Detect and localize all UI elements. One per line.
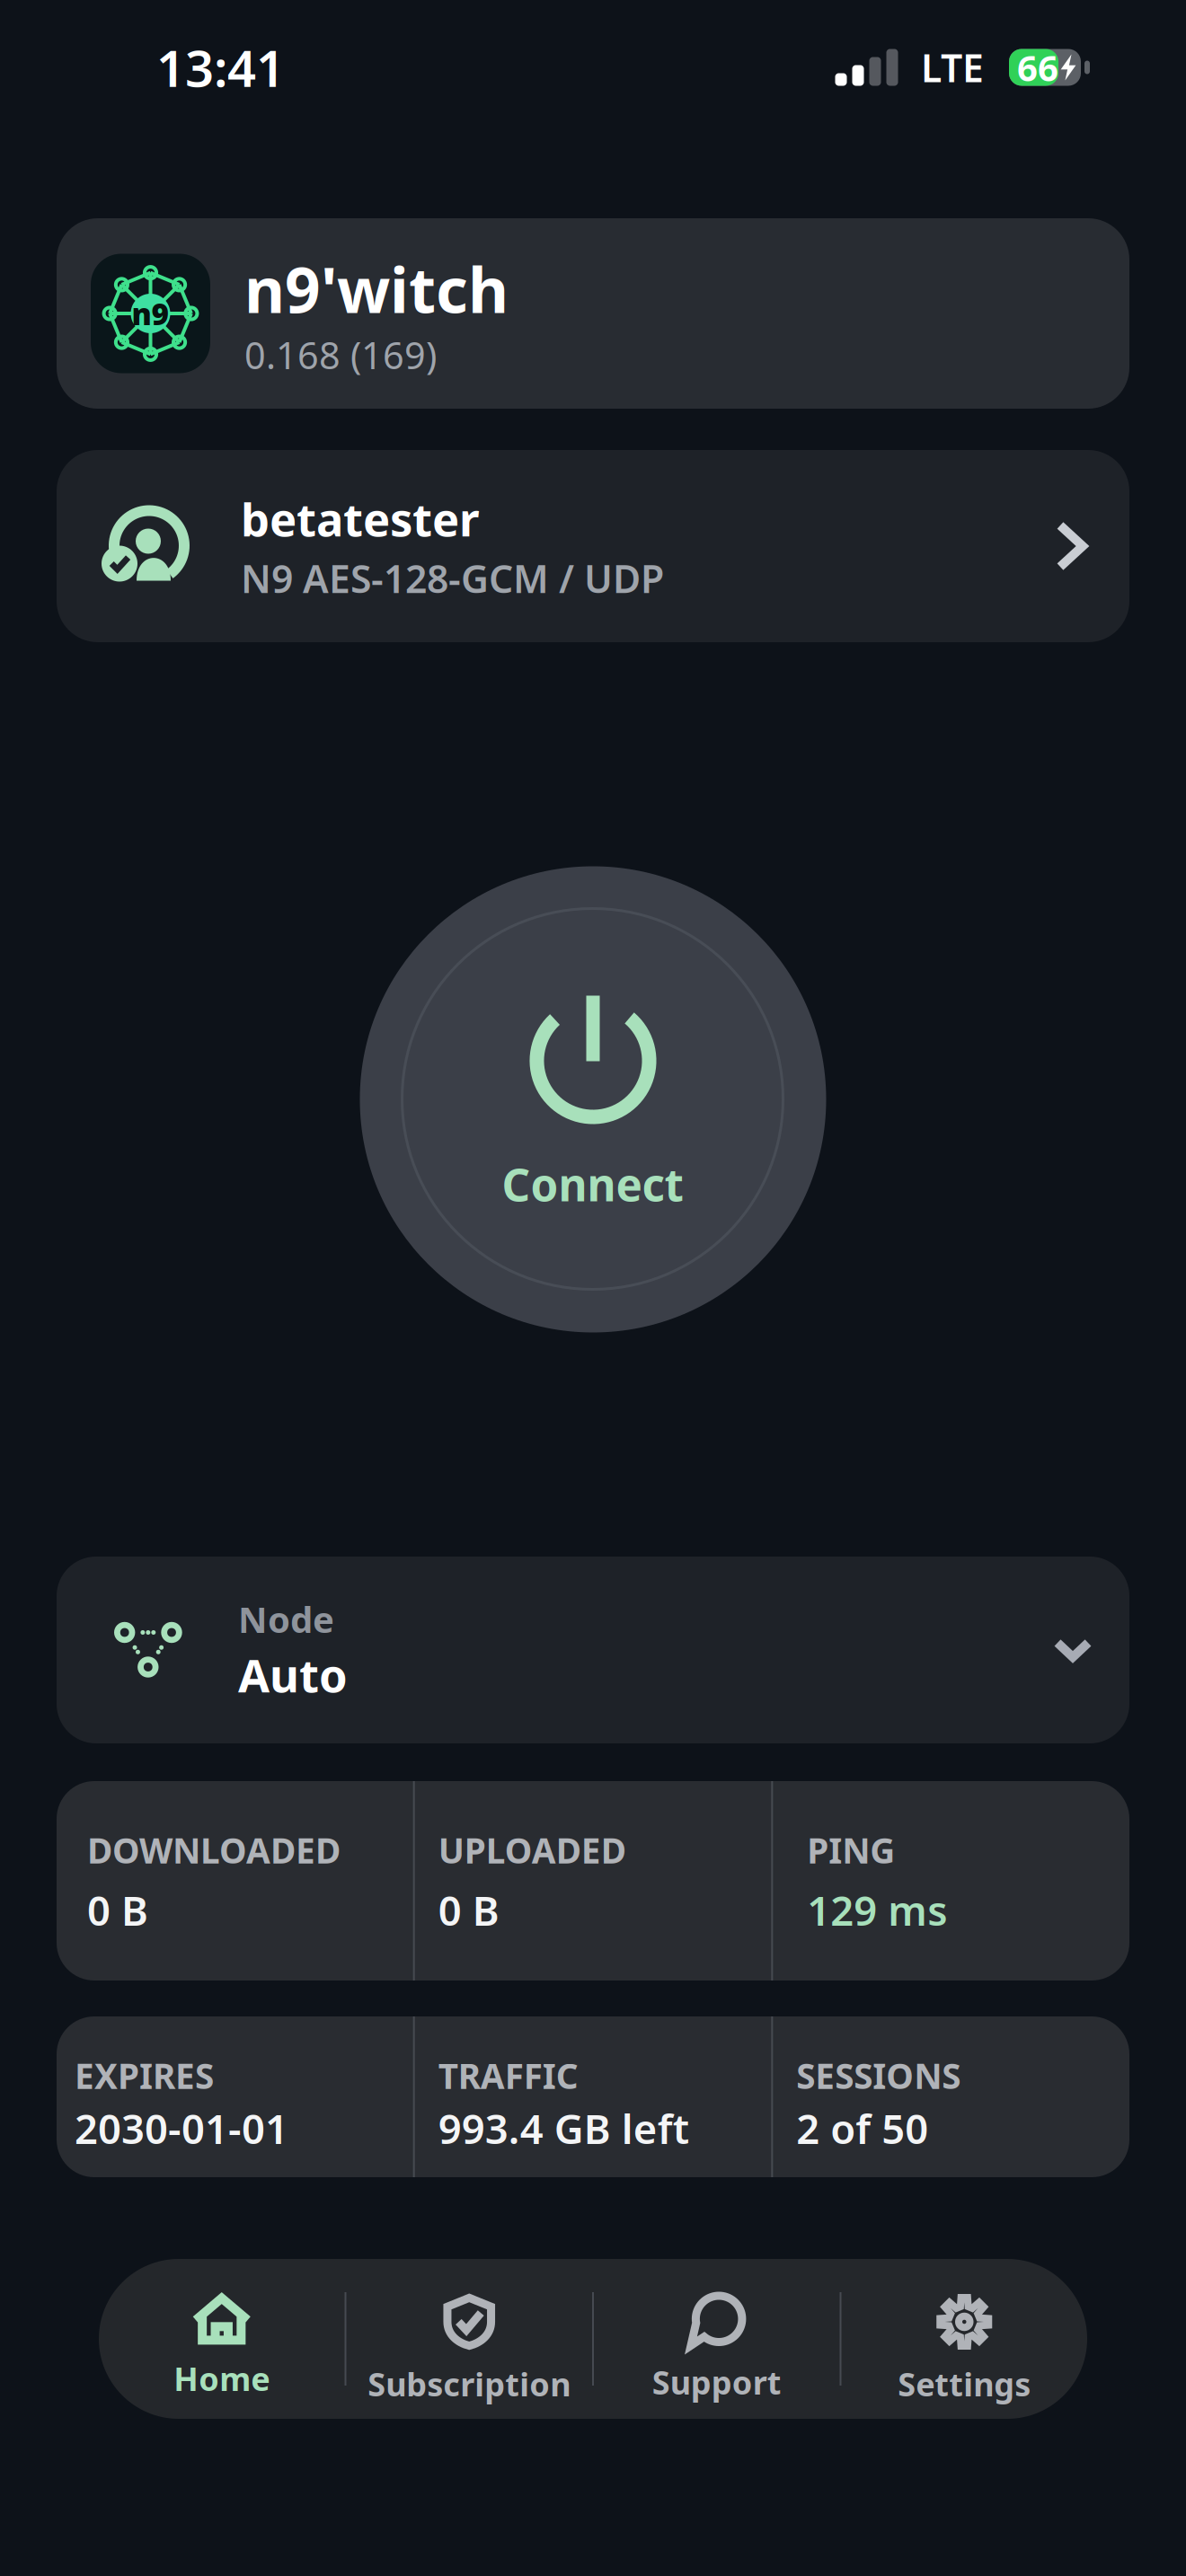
- staticText: n9'witch: [244, 247, 509, 330]
- staticText: 66: [1017, 43, 1058, 91]
- staticText: EXPIRES: [75, 2052, 214, 2098]
- staticText: Support: [652, 2361, 782, 2403]
- staticText: DOWNLOADED: [87, 1827, 341, 1873]
- staticText: Node: [238, 1595, 334, 1643]
- staticText: PING: [807, 1827, 895, 1873]
- button[interactable]: Connect: [360, 866, 826, 1332]
- button[interactable]: Subscription: [346, 2259, 592, 2419]
- staticText: 129 ms: [807, 1883, 947, 1937]
- staticText: 0 B: [438, 1883, 499, 1937]
- staticText: Subscription: [368, 2362, 571, 2405]
- staticText: Home: [174, 2357, 270, 2400]
- staticText: LTE: [921, 42, 984, 93]
- staticText: 0 B: [87, 1883, 148, 1937]
- button[interactable]: betatester: [57, 450, 1129, 642]
- staticText: Auto: [238, 1644, 348, 1705]
- button[interactable]: Support: [594, 2259, 840, 2419]
- staticText: Settings: [898, 2362, 1031, 2405]
- staticText: 993.4 GB left: [438, 2101, 689, 2155]
- button[interactable]: Node: [57, 1557, 1129, 1743]
- staticText: 2 of 50: [796, 2101, 928, 2155]
- staticText: 0.168 (169): [244, 330, 437, 379]
- staticText: SESSIONS: [796, 2052, 961, 2098]
- staticText: TRAFFIC: [438, 2052, 578, 2098]
- staticText: 2030-01-01: [75, 2101, 288, 2155]
- staticText: N9 AES-128-GCM / UDP: [241, 553, 664, 604]
- staticText: 13:41: [156, 34, 285, 101]
- staticText: Connect: [502, 1155, 683, 1213]
- button[interactable]: Home: [99, 2259, 345, 2419]
- staticText: UPLOADED: [438, 1827, 626, 1873]
- button[interactable]: Settings: [841, 2259, 1087, 2419]
- staticText: betatester: [241, 489, 480, 549]
- staticText: n9: [132, 294, 169, 333]
